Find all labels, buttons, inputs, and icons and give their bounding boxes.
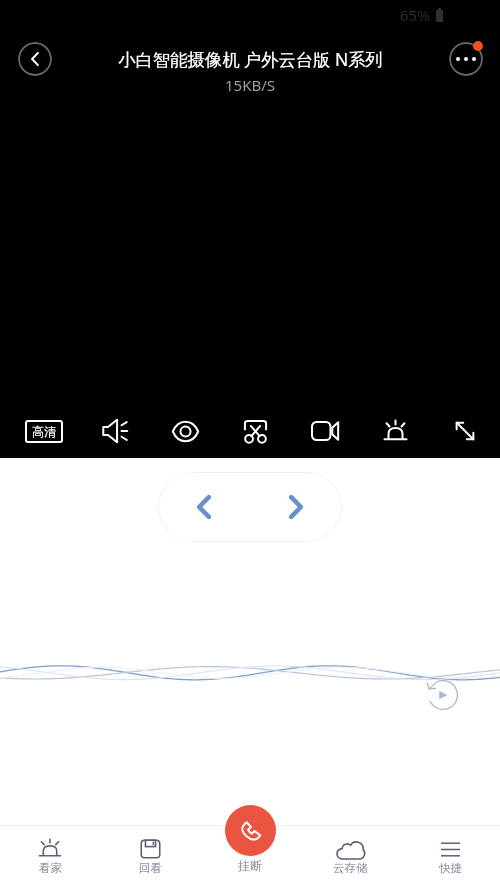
staticText: 云存储 — [333, 861, 368, 875]
staticText: 挂断 — [226, 858, 274, 873]
button[interactable]: Pan right — [250, 472, 342, 542]
button[interactable]: 看家 — [0, 825, 100, 889]
button[interactable]: HD quality — [8, 403, 79, 459]
button[interactable]: Back — [18, 42, 52, 76]
button[interactable]: Replay — [427, 679, 459, 711]
staticText: 看家 — [39, 861, 62, 875]
staticText: 快捷 — [439, 861, 462, 875]
button[interactable]: Record video — [290, 403, 360, 459]
button[interactable]: 云存储 — [300, 825, 400, 889]
button[interactable]: Speaker — [79, 403, 150, 459]
button[interactable]: Full screen — [430, 403, 500, 459]
staticText: 高清 — [32, 424, 56, 439]
staticText: 回看 — [139, 861, 162, 875]
button[interactable]: Pan left — [158, 472, 250, 542]
staticText: 小白智能摄像机 户外云台版 N系列 — [118, 48, 383, 72]
button[interactable]: Siren — [360, 403, 430, 459]
button[interactable]: Privacy — [150, 403, 220, 459]
staticText: 65% — [400, 5, 430, 25]
staticText: 15KB/S — [225, 75, 276, 95]
button[interactable]: Hang up — [225, 805, 276, 856]
button[interactable]: 回看 — [100, 825, 200, 889]
button[interactable]: 快捷 — [400, 825, 500, 889]
button[interactable]: Clip — [220, 403, 290, 459]
button[interactable]: More options — [449, 42, 483, 76]
